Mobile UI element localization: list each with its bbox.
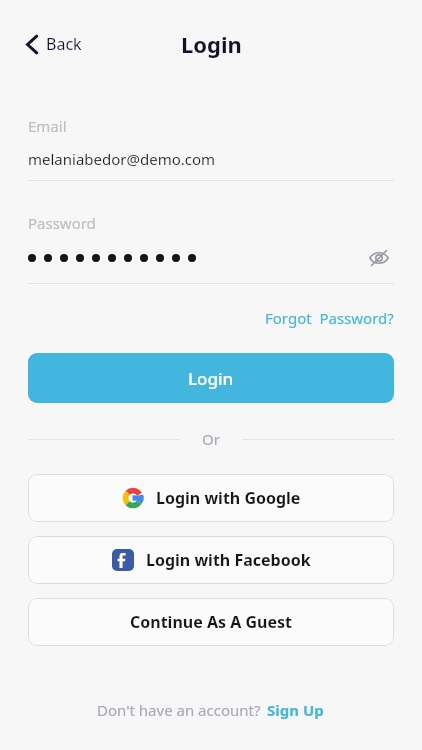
button[interactable]: Login with Google bbox=[28, 474, 394, 522]
staticText: melaniabedor@demo.com bbox=[28, 149, 216, 169]
button[interactable]: Login with Facebook bbox=[28, 536, 394, 584]
staticText: Or bbox=[202, 429, 220, 449]
staticText: Continue As A Guest bbox=[130, 611, 292, 633]
button[interactable]: Sign Up bbox=[265, 698, 326, 722]
staticText: Login with Facebook bbox=[146, 549, 311, 571]
staticText: Sign Up bbox=[267, 700, 324, 720]
button[interactable]: Back bbox=[20, 27, 88, 61]
staticText: Password bbox=[28, 213, 96, 233]
button[interactable]: Show password bbox=[364, 243, 394, 273]
button[interactable]: Continue As A Guest bbox=[28, 598, 394, 646]
button[interactable]: Login bbox=[28, 353, 394, 403]
staticText: Login bbox=[188, 367, 234, 390]
button[interactable]: Forgot Password? bbox=[259, 304, 400, 332]
staticText: Back bbox=[46, 33, 82, 55]
staticText: Email bbox=[28, 116, 67, 136]
staticText: Login with Google bbox=[156, 487, 301, 509]
staticText: Login bbox=[181, 29, 242, 59]
staticText: Don't have an account? bbox=[97, 700, 265, 720]
staticText: Forgot Password? bbox=[265, 308, 394, 328]
